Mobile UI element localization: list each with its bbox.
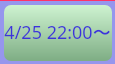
staticText: 4/25 22:00〜 (4, 20, 111, 45)
button[interactable]: 4/25 22:00〜 (4, 5, 112, 61)
